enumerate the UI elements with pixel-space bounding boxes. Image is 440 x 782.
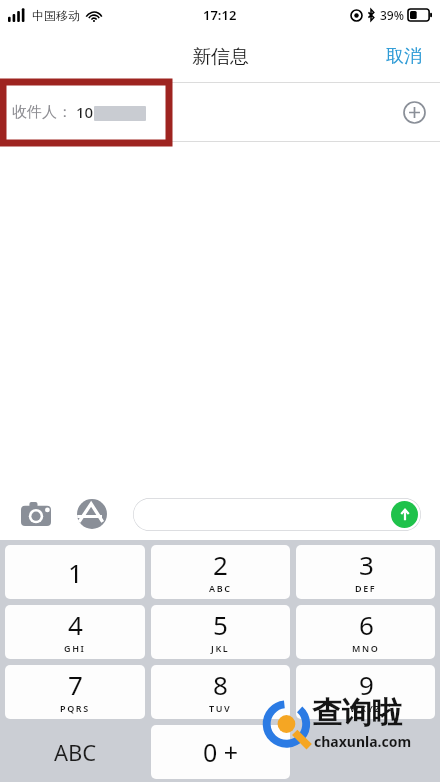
staticText: GHI [64, 642, 86, 654]
staticText: 收件人： [12, 103, 72, 122]
staticText: 新信息 [192, 45, 249, 69]
button[interactable]: 取消 [376, 39, 432, 74]
staticText: 0 + [203, 735, 239, 769]
button[interactable]: 0 + [151, 725, 290, 779]
staticText: 10 [76, 102, 94, 122]
staticText: 2 [213, 547, 228, 582]
button[interactable]: 6 [296, 605, 435, 659]
staticText: 3 [359, 547, 374, 582]
staticText: 取消 [386, 45, 422, 68]
button[interactable]: 8 [151, 665, 290, 719]
button[interactable]: 2 [151, 545, 290, 599]
button[interactable]: Send [391, 501, 418, 528]
staticText: chaxunla.com [314, 732, 412, 751]
staticText: PQRS [60, 702, 90, 714]
staticText: 1 [68, 555, 83, 590]
button[interactable]: 3 [296, 545, 435, 599]
button[interactable]: Add contact [396, 94, 432, 130]
staticText: 6 [359, 607, 374, 642]
button[interactable]: 5 [151, 605, 290, 659]
staticText: 17:12 [203, 6, 237, 24]
staticText: ABC [209, 582, 232, 594]
staticText: JKL [211, 642, 230, 654]
staticText: 7 [68, 667, 83, 702]
button[interactable]: 收件人： [0, 83, 440, 141]
staticText: 5 [213, 607, 228, 642]
button[interactable]: Send [133, 498, 421, 531]
button[interactable]: Camera [14, 492, 58, 536]
staticText: 39% [380, 7, 404, 23]
staticText: 查询啦 [312, 694, 402, 732]
staticText: 中国移动 [32, 8, 80, 23]
staticText: DEF [355, 582, 377, 594]
staticText: 9 [359, 667, 374, 702]
staticText: 8 [213, 667, 228, 702]
button[interactable]: 4 [5, 605, 145, 659]
staticText: ABC [54, 737, 97, 767]
staticText: TUV [209, 702, 232, 714]
staticText: WXYZ [350, 702, 382, 714]
button[interactable]: ABC [5, 725, 145, 779]
button[interactable]: App Store [70, 492, 114, 536]
staticText: 4 [68, 607, 83, 642]
staticText: MNO [352, 642, 380, 654]
button[interactable]: 9 [296, 665, 435, 719]
button[interactable]: 1 [5, 545, 145, 599]
button[interactable]: 7 [5, 665, 145, 719]
